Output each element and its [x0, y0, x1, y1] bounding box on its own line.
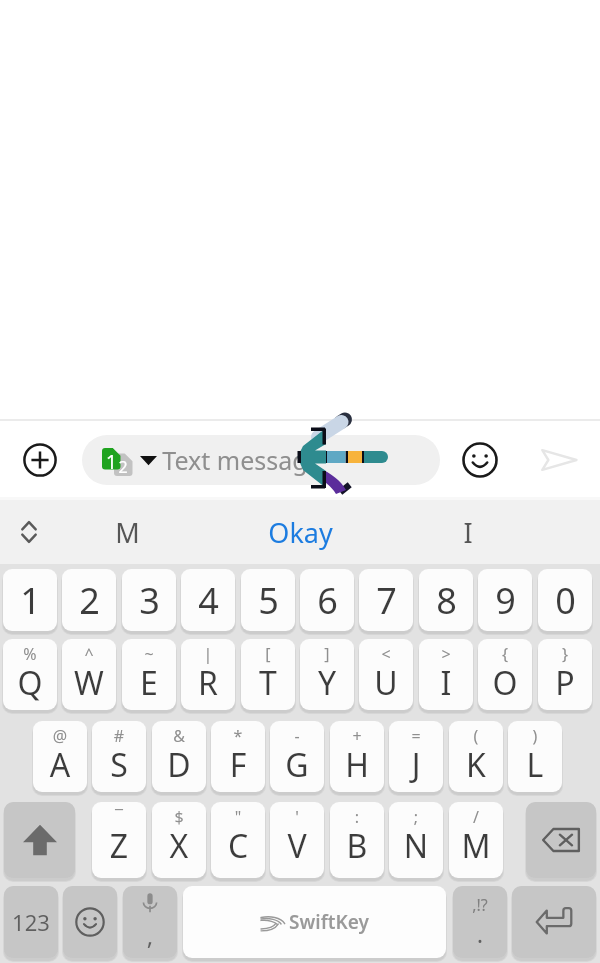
staticText: * [211, 725, 265, 747]
button[interactable]: + [330, 721, 384, 792]
staticText: - [270, 725, 324, 747]
staticText: T [241, 661, 295, 705]
staticText: U [359, 661, 413, 705]
button[interactable]: 7 [359, 569, 413, 631]
button[interactable]: 3 [122, 569, 176, 631]
staticText: $ [152, 806, 206, 828]
staticText: . [453, 917, 507, 950]
button[interactable]: : [330, 802, 384, 878]
staticText: / [449, 806, 503, 828]
staticText: 123 [12, 907, 50, 937]
button[interactable]: 123 [4, 886, 58, 958]
button[interactable]: 4 [181, 569, 235, 631]
staticText: V [270, 824, 324, 868]
staticText: # [92, 725, 146, 747]
staticText: 7 [376, 576, 397, 625]
button[interactable]: { [478, 639, 532, 710]
staticText: = [389, 725, 443, 747]
staticText: < [359, 643, 413, 665]
staticText: S [92, 743, 146, 787]
staticText: L [508, 743, 562, 787]
button[interactable]: 8 [419, 569, 473, 631]
staticText: D [152, 743, 206, 787]
button[interactable]: ' [270, 802, 324, 878]
button[interactable]: 1 [82, 435, 440, 485]
staticText: + [330, 725, 384, 747]
button[interactable]: " [211, 802, 265, 878]
button[interactable]: [ [241, 639, 295, 710]
button[interactable]: Space [183, 886, 446, 958]
staticText: 8 [436, 576, 457, 625]
staticText: 2 [79, 576, 100, 625]
button[interactable]: Add attachment [17, 437, 63, 483]
button[interactable]: } [538, 639, 592, 710]
staticText: X [152, 824, 206, 868]
button[interactable]: % [3, 639, 57, 710]
button[interactable]: = [389, 721, 443, 792]
button[interactable]: Send [536, 437, 582, 483]
button[interactable]: 9 [478, 569, 532, 631]
button[interactable]: ^ [62, 639, 116, 710]
staticText: } [538, 643, 592, 665]
button[interactable]: & [152, 721, 206, 792]
button[interactable]: Emoji keyboard [63, 886, 117, 958]
button[interactable]: @ [33, 721, 87, 792]
staticText: 6 [317, 576, 338, 625]
staticText: & [152, 725, 206, 747]
staticText: , [123, 919, 177, 952]
staticText: @ [33, 725, 87, 747]
staticText: { [478, 643, 532, 665]
staticText: ^ [62, 643, 116, 665]
staticText: P [538, 661, 592, 705]
button[interactable]: ) [508, 721, 562, 792]
staticText: Z [92, 824, 146, 868]
button[interactable]: < [359, 639, 413, 710]
button[interactable]: 6 [300, 569, 354, 631]
button[interactable]: Shift [4, 802, 75, 878]
button[interactable]: Enter [512, 886, 596, 958]
staticText: N [389, 824, 443, 868]
staticText: 1 [20, 576, 41, 625]
button[interactable]: | [181, 639, 235, 710]
button[interactable]: ] [300, 639, 354, 710]
button[interactable]: I [421, 500, 515, 564]
staticText: A [33, 743, 87, 787]
button[interactable]: $ [152, 802, 206, 878]
button[interactable]: Emoji [457, 437, 503, 483]
staticText: B [330, 824, 384, 868]
button[interactable]: * [211, 721, 265, 792]
staticText: O [478, 661, 532, 705]
staticText: M [115, 514, 140, 551]
staticText: E [122, 661, 176, 705]
staticText: 5 [258, 576, 279, 625]
button[interactable]: M [80, 500, 174, 564]
staticText: 9 [495, 576, 516, 625]
staticText: 3 [139, 576, 160, 625]
button[interactable]: Punctuation [453, 886, 507, 958]
staticText: Q [3, 661, 57, 705]
button[interactable]: Voice input and comma [123, 886, 177, 958]
staticText: Y [300, 661, 354, 705]
button[interactable]: 0 [538, 569, 592, 631]
button[interactable]: 1 [3, 569, 57, 631]
button[interactable]: ( [449, 721, 503, 792]
staticText: 1 [103, 449, 120, 475]
button[interactable]: > [419, 639, 473, 710]
staticText: 4 [198, 576, 219, 625]
button[interactable]: 2 [62, 569, 116, 631]
staticText: % [3, 643, 57, 665]
button[interactable]: # [92, 721, 146, 792]
button[interactable]: ¯ [92, 802, 146, 878]
button[interactable]: ; [389, 802, 443, 878]
button[interactable]: Okay [232, 500, 368, 564]
button[interactable]: - [270, 721, 324, 792]
button[interactable]: / [449, 802, 503, 878]
staticText: | [181, 643, 235, 665]
button[interactable]: ~ [122, 639, 176, 710]
button[interactable]: Backspace [526, 802, 596, 878]
button[interactable]: Expand predictions [0, 500, 58, 564]
staticText: ' [270, 806, 324, 828]
staticText: ] [300, 643, 354, 665]
staticText: F [211, 743, 265, 787]
button[interactable]: 5 [241, 569, 295, 631]
